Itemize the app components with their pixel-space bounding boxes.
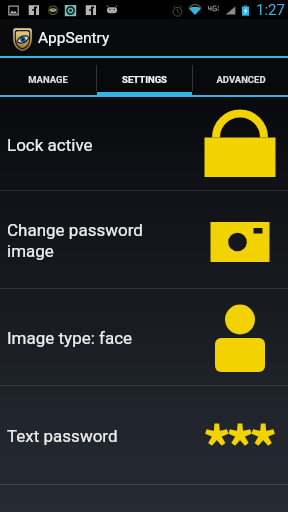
staticText: Change password image: [7, 220, 204, 261]
staticText: Text password: [7, 426, 204, 446]
staticText: 1:27: [256, 1, 285, 19]
button[interactable]: Text password: [0, 386, 288, 484]
staticText: MANAGE: [28, 74, 68, 85]
button[interactable]: Change password image: [0, 191, 288, 288]
button[interactable]: ADVANCED: [193, 58, 288, 97]
staticText: ADVANCED: [216, 74, 266, 85]
staticText: Image type: face: [7, 328, 204, 348]
button[interactable]: SETTINGS: [97, 58, 192, 97]
staticText: SETTINGS: [122, 74, 167, 85]
staticText: Lock active: [7, 135, 204, 155]
button[interactable]: MANAGE: [0, 58, 96, 97]
button[interactable]: AppSentry: [0, 19, 288, 56]
button[interactable]: Image type: face: [0, 289, 288, 385]
staticText: AppSentry: [38, 29, 110, 47]
button[interactable]: Lock active: [0, 97, 288, 190]
